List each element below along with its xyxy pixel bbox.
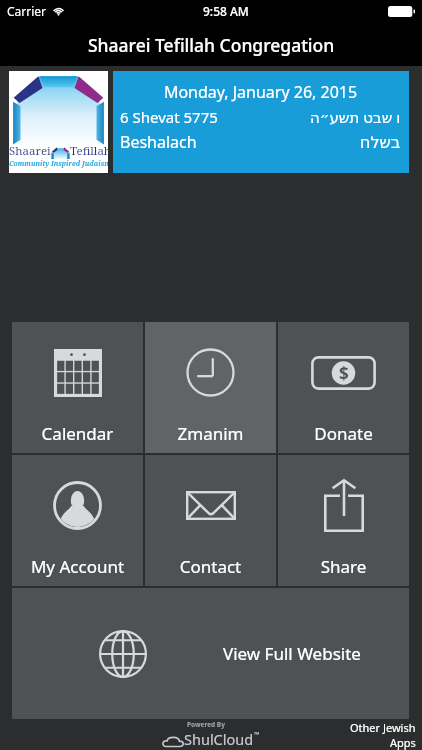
staticText: Contact (145, 555, 276, 578)
staticText: ShulCloud (184, 729, 254, 749)
staticText: ו שבט תשע״ה (310, 107, 401, 127)
button[interactable]: View Full Website (12, 588, 409, 719)
staticText: Powered By (187, 720, 225, 729)
staticText: Community Inspired Judaism (9, 159, 108, 168)
staticText: View Full Website (223, 642, 361, 665)
button[interactable]: Zmanim (145, 322, 276, 453)
button[interactable]: Shaarei (9, 71, 108, 173)
staticText: Other Jewish (350, 720, 416, 735)
button[interactable]: Powered By (163, 720, 260, 749)
staticText: Carrier (7, 3, 47, 19)
button[interactable]: $ (278, 322, 409, 453)
staticText: Tefillah (70, 143, 108, 159)
staticText: בשלח (360, 133, 401, 152)
staticText: Share (278, 555, 409, 578)
button[interactable]: Monday, January 26, 2015 (113, 71, 409, 173)
staticText: Zmanim (145, 422, 276, 445)
button[interactable]: My Account (12, 455, 143, 586)
staticText: ™ (254, 730, 260, 740)
staticText: Shaarei (9, 143, 51, 159)
button[interactable]: Contact (145, 455, 276, 586)
button[interactable]: Calendar (12, 322, 143, 453)
staticText: Apps (390, 735, 416, 750)
staticText: 9:58 AM (203, 3, 249, 19)
staticText: Monday, January 26, 2015 (120, 81, 401, 103)
button[interactable]: Share (278, 455, 409, 586)
button[interactable]: Other Jewish (350, 720, 416, 750)
staticText: Calendar (12, 422, 143, 445)
staticText: Shaarei Tefillah Congregation (88, 33, 335, 57)
staticText: Donate (278, 422, 409, 445)
staticText: My Account (12, 555, 143, 578)
staticText: $ (339, 362, 349, 385)
staticText: 6 Shevat 5775 (120, 107, 218, 127)
staticText: Beshalach (120, 131, 197, 153)
